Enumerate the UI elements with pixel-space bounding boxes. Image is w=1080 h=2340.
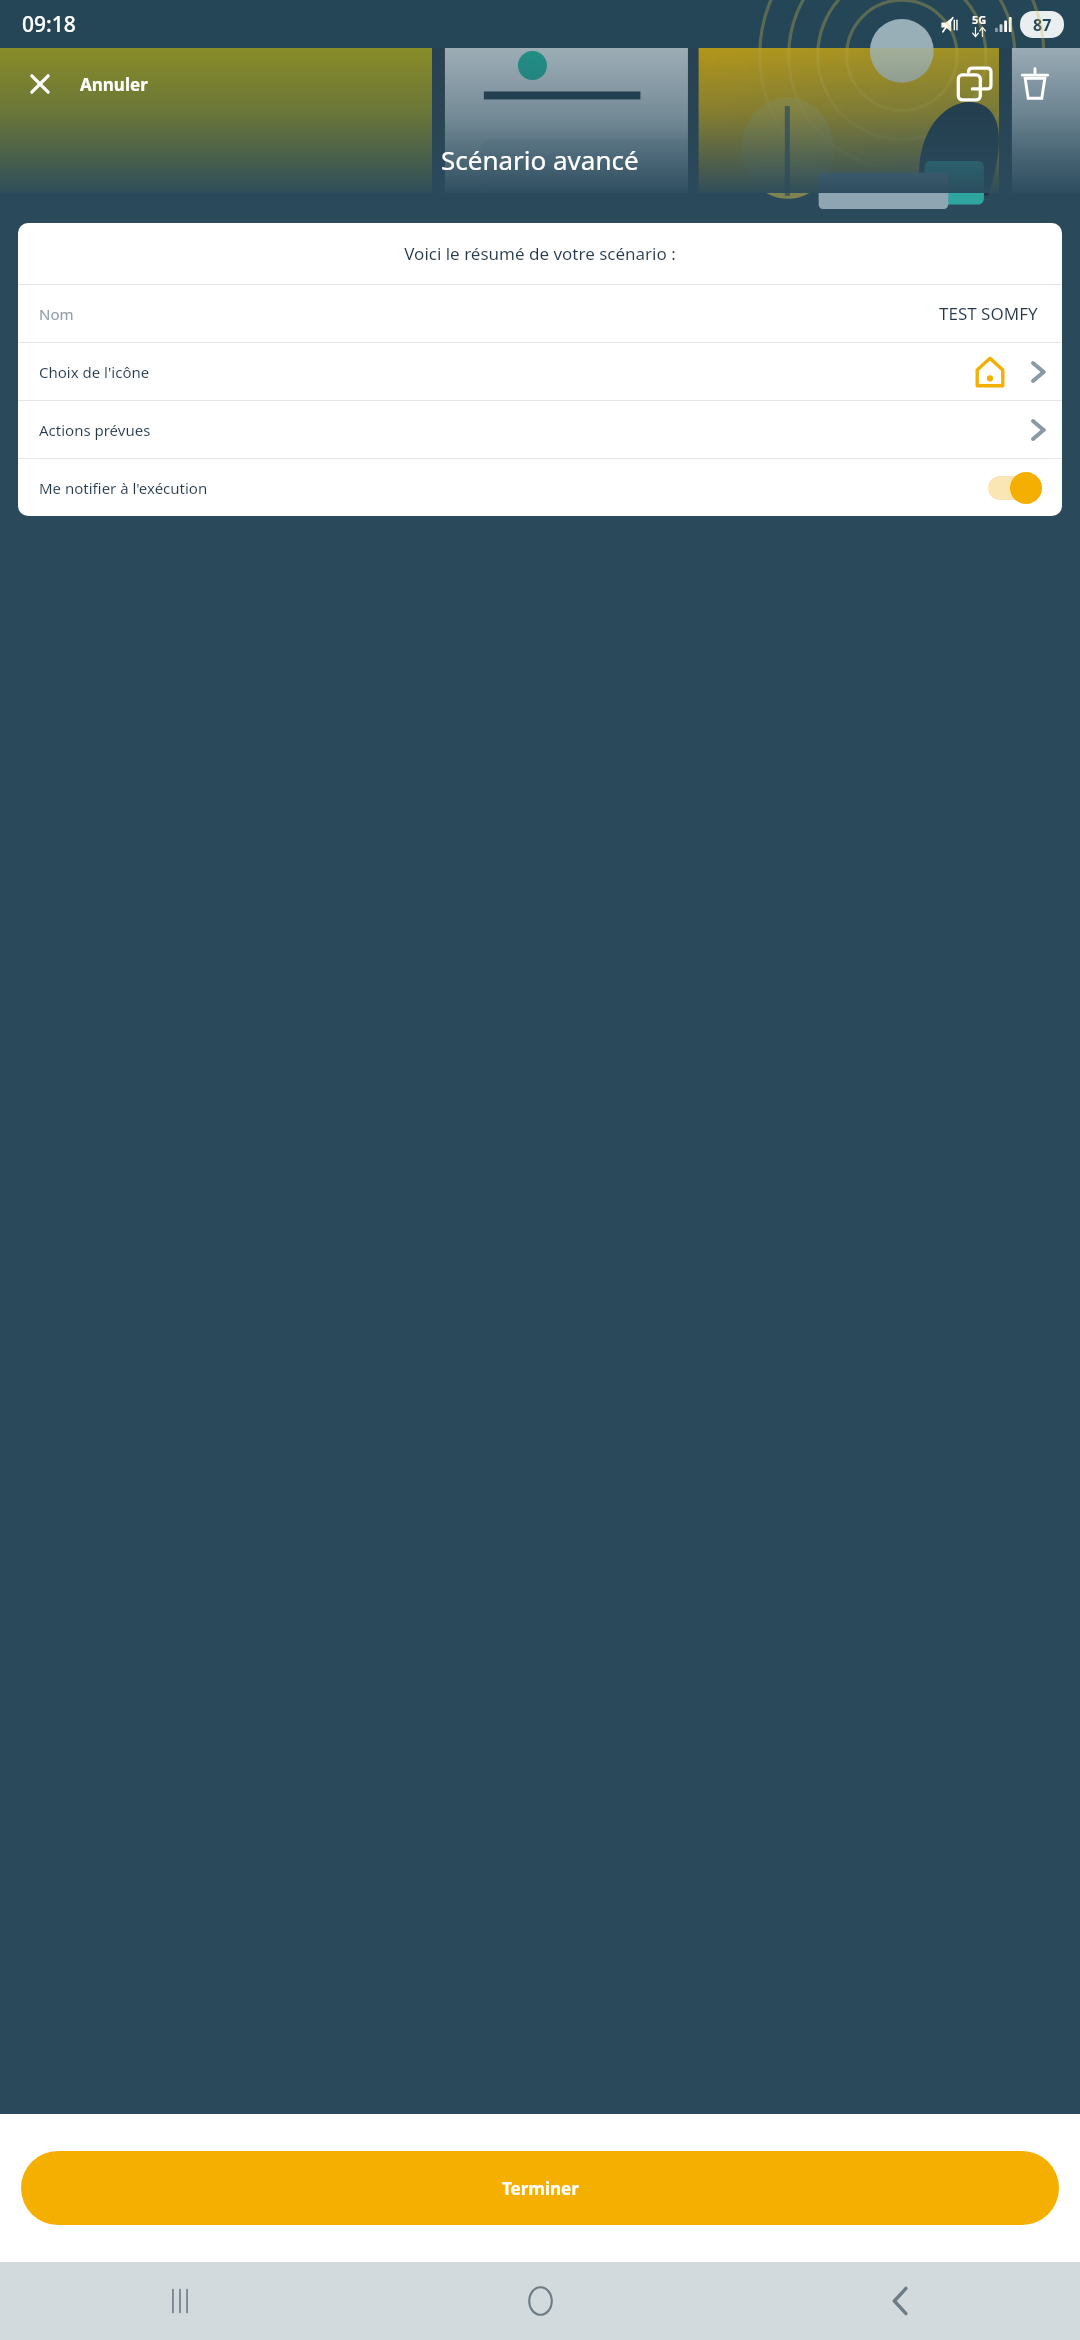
staticText: Me notifier à l'exécution <box>39 478 208 498</box>
staticText: 87 <box>1033 14 1052 36</box>
staticText: Terminer <box>502 2177 579 2200</box>
button[interactable]: Me notifier à l'exécution <box>986 471 1044 505</box>
button[interactable]: Retour <box>864 2265 936 2337</box>
button[interactable]: Accueil <box>504 2265 576 2337</box>
button[interactable]: Me notifier à l'exécution <box>18 459 1062 516</box>
staticText: Scénario avancé <box>441 142 639 177</box>
staticText: Choix de l'icône <box>39 362 150 382</box>
button[interactable]: Annuler <box>66 63 162 106</box>
button[interactable]: Fermer <box>14 58 66 110</box>
staticText: TEST SOMFY <box>939 302 1038 325</box>
button[interactable]: Terminer <box>21 2151 1059 2225</box>
staticText: 5G <box>972 12 987 27</box>
staticText: Actions prévues <box>39 420 151 440</box>
button[interactable]: Actions prévues <box>18 401 1062 458</box>
staticText: 09:18 <box>22 10 76 39</box>
button[interactable]: Supprimer <box>1006 55 1064 113</box>
staticText: Nom <box>39 304 74 324</box>
button[interactable]: Choix de l'icône <box>18 343 1062 400</box>
staticText: Annuler <box>80 73 148 96</box>
button[interactable]: Applications récentes <box>144 2265 216 2337</box>
staticText: Voici le résumé de votre scénario : <box>404 242 676 265</box>
button[interactable]: Dupliquer <box>944 53 1006 115</box>
